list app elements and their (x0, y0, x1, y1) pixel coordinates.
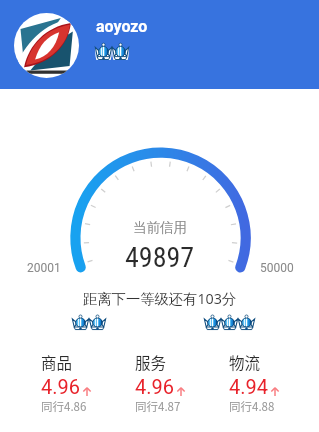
staticText: 同行4.86 (41, 398, 87, 415)
staticText: 当前信用 (133, 219, 187, 236)
staticText: 服务 (135, 351, 167, 373)
staticText: 4.96 (135, 375, 174, 398)
staticText: 物流 (229, 351, 261, 373)
staticText: aoyozo (96, 17, 148, 36)
button[interactable]: 服务 (135, 351, 187, 415)
staticText: 49897 (125, 241, 195, 274)
button[interactable]: aoyozo (0, 0, 319, 89)
button[interactable]: 物流 (229, 351, 281, 415)
staticText: 20001 (27, 261, 61, 275)
button[interactable]: 商品 (41, 351, 93, 415)
staticText: 距离下一等级还有103分 (83, 289, 237, 309)
staticText: 4.94 (229, 375, 268, 398)
staticText: 4.96 (41, 375, 80, 398)
staticText: 50000 (260, 261, 294, 275)
staticText: 同行4.88 (229, 398, 275, 415)
staticText: 商品 (41, 351, 73, 373)
staticText: 同行4.87 (135, 398, 181, 415)
